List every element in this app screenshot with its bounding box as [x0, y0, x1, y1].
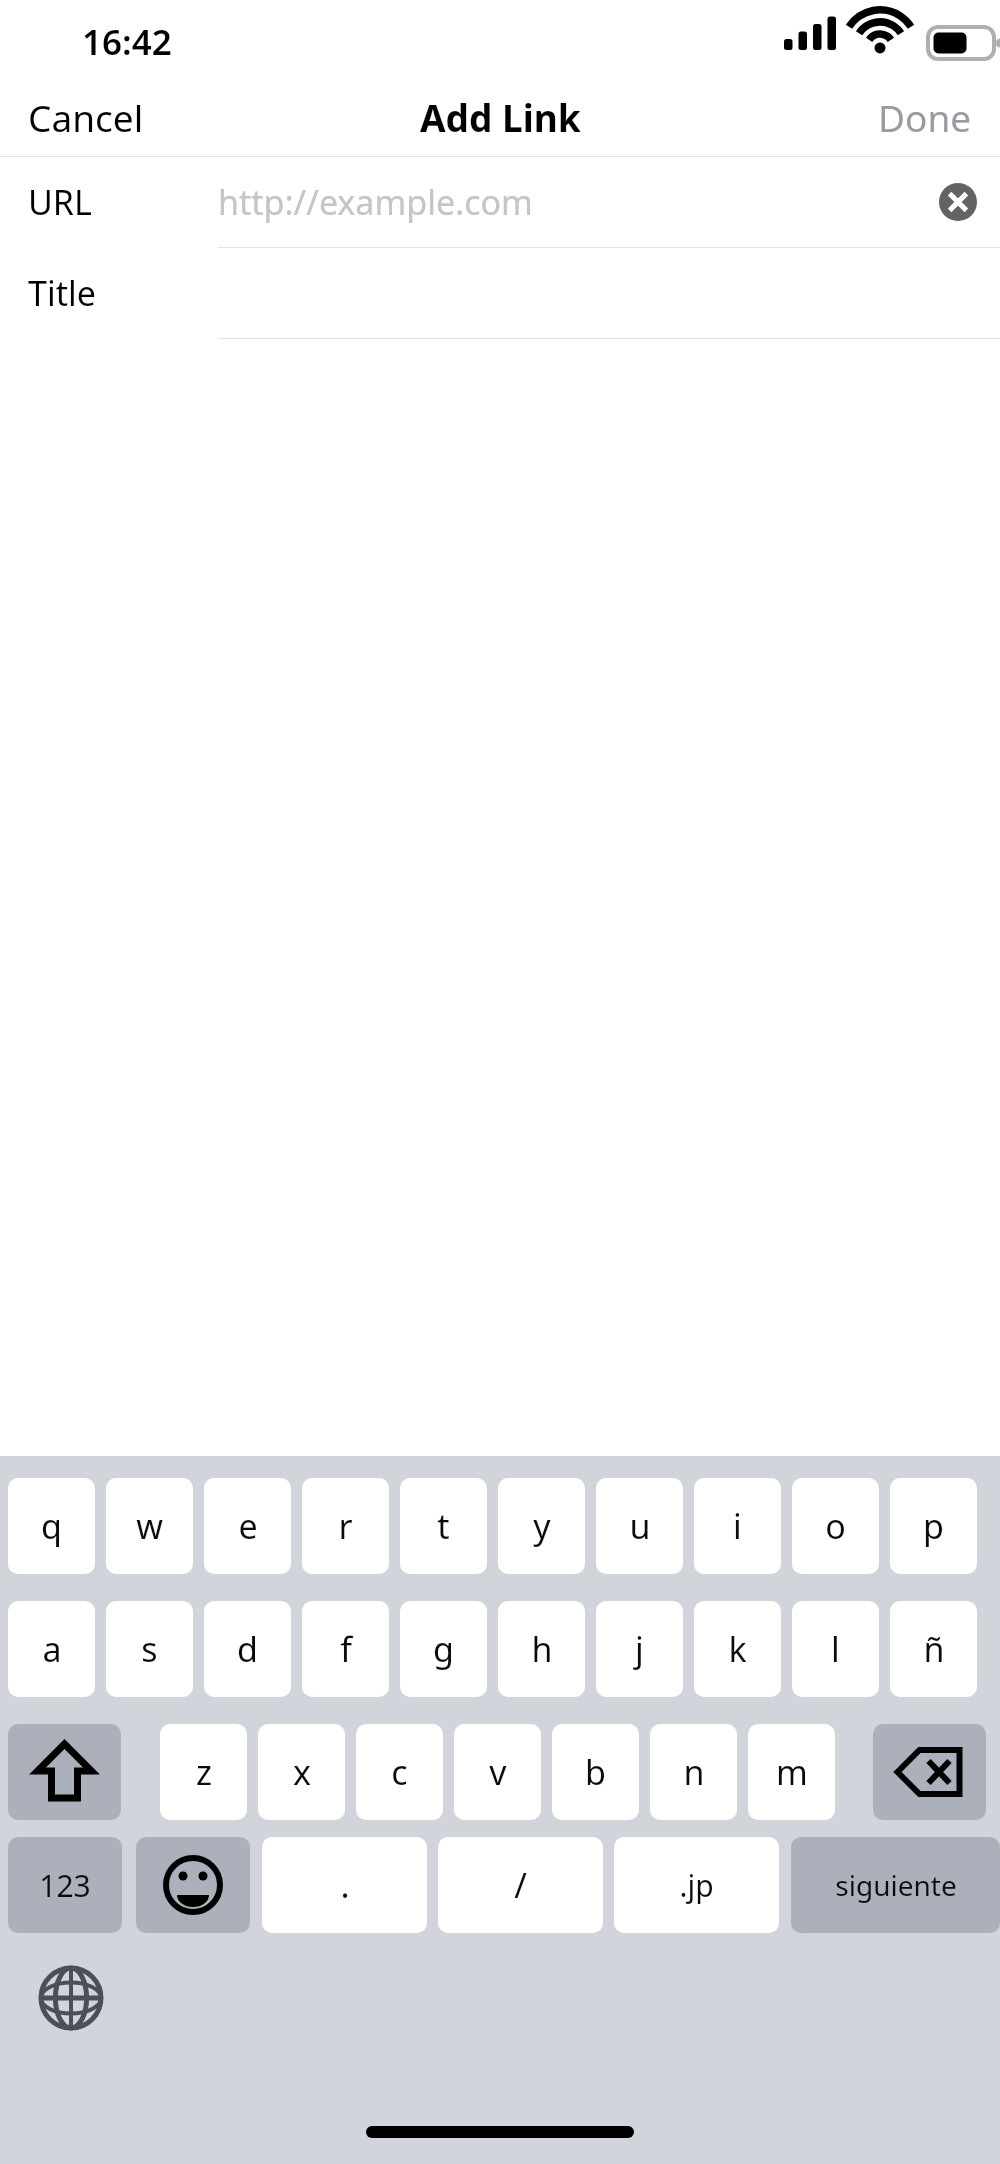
staticText: r — [338, 1503, 353, 1549]
staticText: Cancel — [28, 92, 144, 142]
button[interactable]: c — [356, 1724, 443, 1820]
button[interactable]: 123 — [8, 1837, 122, 1933]
staticText: URL — [28, 179, 92, 225]
button[interactable]: p — [890, 1478, 977, 1574]
button[interactable]: u — [596, 1478, 683, 1574]
staticText: k — [728, 1626, 747, 1672]
staticText: .jp — [679, 1865, 714, 1906]
button[interactable]: Emoji keyboard — [136, 1837, 250, 1933]
staticText: y — [533, 1503, 551, 1549]
button[interactable]: b — [552, 1724, 639, 1820]
staticText: x — [293, 1749, 311, 1795]
staticText: p — [923, 1503, 944, 1549]
staticText: Title — [28, 270, 96, 316]
button[interactable]: k — [694, 1601, 781, 1697]
staticText: a — [42, 1626, 62, 1672]
button[interactable]: o — [792, 1478, 879, 1574]
button[interactable]: s — [106, 1601, 193, 1697]
staticText: g — [433, 1626, 454, 1672]
staticText: ñ — [923, 1626, 945, 1672]
staticText: z — [196, 1749, 212, 1795]
staticText: Add Link — [420, 92, 581, 142]
staticText: w — [136, 1503, 163, 1549]
button[interactable]: z — [160, 1724, 247, 1820]
staticText: v — [489, 1749, 507, 1795]
button[interactable]: h — [498, 1601, 585, 1697]
button[interactable]: URL — [0, 157, 1000, 247]
staticText: d — [237, 1626, 258, 1672]
staticText: u — [629, 1503, 651, 1549]
staticText: m — [776, 1749, 808, 1795]
staticText: l — [831, 1626, 840, 1672]
button[interactable]: w — [106, 1478, 193, 1574]
button[interactable]: v — [454, 1724, 541, 1820]
staticText: h — [531, 1626, 553, 1672]
staticText: 123 — [39, 1865, 91, 1906]
staticText: f — [340, 1626, 352, 1672]
button[interactable]: e — [204, 1478, 291, 1574]
staticText: b — [585, 1749, 606, 1795]
staticText: siguiente — [835, 1866, 957, 1904]
staticText: j — [635, 1626, 644, 1672]
button[interactable]: Change keyboard language — [34, 1961, 108, 2035]
staticText: http://example.com — [218, 179, 533, 225]
button[interactable]: q — [8, 1478, 95, 1574]
button[interactable]: Backspace — [873, 1724, 986, 1820]
button[interactable]: t — [400, 1478, 487, 1574]
staticText: i — [733, 1503, 742, 1549]
button[interactable]: a — [8, 1601, 95, 1697]
button[interactable]: .jp — [614, 1837, 779, 1933]
staticText: s — [141, 1626, 158, 1672]
button[interactable]: ñ — [890, 1601, 977, 1697]
staticText: . — [340, 1862, 350, 1908]
staticText: / — [514, 1862, 527, 1908]
button[interactable]: Shift — [8, 1724, 121, 1820]
button[interactable]: Cancel — [0, 82, 168, 152]
button[interactable]: n — [650, 1724, 737, 1820]
button[interactable]: / — [438, 1837, 603, 1933]
staticText: q — [41, 1503, 62, 1549]
staticText: c — [391, 1749, 408, 1795]
button[interactable]: Clear text — [928, 172, 988, 232]
staticText: 16:42 — [82, 18, 172, 66]
staticText: t — [437, 1503, 450, 1549]
button[interactable]: r — [302, 1478, 389, 1574]
staticText: e — [238, 1503, 258, 1549]
button[interactable]: Done — [854, 82, 1000, 152]
button[interactable]: Title — [0, 248, 1000, 338]
button[interactable]: siguiente — [791, 1837, 1000, 1933]
button[interactable]: f — [302, 1601, 389, 1697]
button[interactable]: . — [262, 1837, 427, 1933]
staticText: n — [683, 1749, 705, 1795]
staticText: o — [825, 1503, 846, 1549]
button[interactable]: m — [748, 1724, 835, 1820]
button[interactable]: j — [596, 1601, 683, 1697]
button[interactable]: i — [694, 1478, 781, 1574]
button[interactable]: g — [400, 1601, 487, 1697]
button[interactable]: y — [498, 1478, 585, 1574]
staticText: Done — [878, 92, 972, 142]
button[interactable]: x — [258, 1724, 345, 1820]
button[interactable]: l — [792, 1601, 879, 1697]
button[interactable]: d — [204, 1601, 291, 1697]
